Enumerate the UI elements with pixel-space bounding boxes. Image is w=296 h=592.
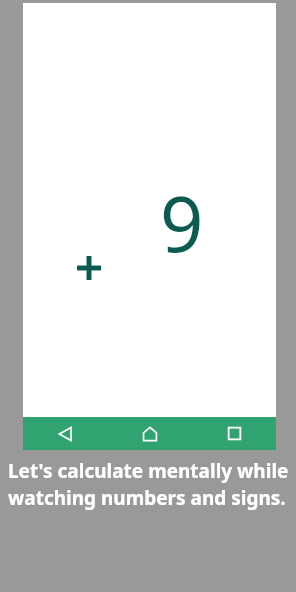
button[interactable]: Recent apps [192, 417, 276, 450]
button[interactable]: Back [23, 417, 108, 450]
staticText: Let's calculate mentally while watching … [8, 458, 290, 511]
button[interactable]: Home [108, 417, 192, 450]
staticText: 9 [160, 171, 204, 275]
